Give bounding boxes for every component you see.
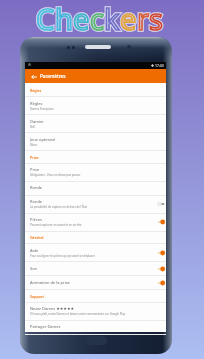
staticText: e: [73, 0, 90, 38]
staticText: Animation de la prise: [30, 280, 70, 285]
staticText: h: [55, 0, 73, 38]
staticText: k: [104, 0, 120, 38]
staticText: Notez Dames ★★★★★: [30, 306, 75, 311]
staticText: c: [90, 0, 104, 38]
button[interactable]: Aide: [25, 244, 166, 262]
button[interactable]: Son: [25, 262, 166, 276]
staticText: s: [149, 0, 163, 38]
button[interactable]: Back: [29, 72, 38, 81]
staticText: La possibilité de capture en dehors de l…: [30, 205, 88, 209]
staticText: Dames Françaises: [30, 107, 54, 111]
staticText: Pour souligner les pièces qui peuvent se…: [30, 254, 95, 258]
staticText: 17:43: [155, 63, 164, 68]
staticText: r: [137, 0, 149, 38]
staticText: Peuvent capturer en avant et en arrière: [30, 223, 82, 227]
button[interactable]: Damier: [25, 115, 166, 133]
staticText: C: [36, 0, 55, 38]
button[interactable]: Jeux optimisé: [25, 133, 166, 151]
staticText: k: [104, 0, 120, 38]
button[interactable]: Prise: [25, 163, 166, 181]
staticText: e: [120, 0, 137, 38]
button[interactable]: Ronde: [25, 181, 166, 195]
staticText: S'il vous plaît, notez Dames et laissez …: [30, 312, 126, 316]
staticText: Damier: [30, 119, 44, 124]
button[interactable]: Notez Dames ★★★★★: [25, 302, 166, 320]
button[interactable]: Partager Dames: [25, 320, 166, 334]
button[interactable]: Animation de la prise: [25, 276, 166, 290]
button[interactable]: Ronde: [25, 195, 166, 213]
staticText: Ronde: [30, 185, 43, 190]
staticText: c: [90, 0, 104, 38]
staticText: Règles: [30, 88, 42, 93]
button[interactable]: Pièces: [25, 213, 166, 231]
staticText: Général: [30, 235, 44, 240]
staticText: 8x8: [30, 125, 35, 129]
staticText: Prise: [30, 155, 39, 160]
staticText: s: [149, 0, 163, 38]
staticText: Partager Dames: [30, 324, 61, 329]
staticText: h: [55, 0, 73, 38]
staticText: Jeux optimisé: [30, 137, 56, 142]
staticText: Obligatoire - Vous ne devez pas passer: [30, 173, 81, 177]
staticText: r: [137, 0, 149, 38]
staticText: Paramètres: [40, 73, 66, 79]
staticText: Blanc: [30, 143, 38, 147]
staticText: Règles: [30, 101, 43, 106]
staticText: e: [73, 0, 90, 38]
staticText: Aide: [30, 248, 39, 253]
staticText: Ronde: [30, 199, 43, 204]
staticText: Prise: [30, 167, 40, 172]
button[interactable]: Back: [25, 69, 166, 83]
staticText: Son: [30, 266, 38, 271]
staticText: Pièces: [30, 217, 42, 222]
button[interactable]: Règles: [25, 97, 166, 115]
staticText: e: [120, 0, 137, 38]
staticText: C: [36, 0, 55, 38]
staticText: Support: [30, 294, 44, 299]
